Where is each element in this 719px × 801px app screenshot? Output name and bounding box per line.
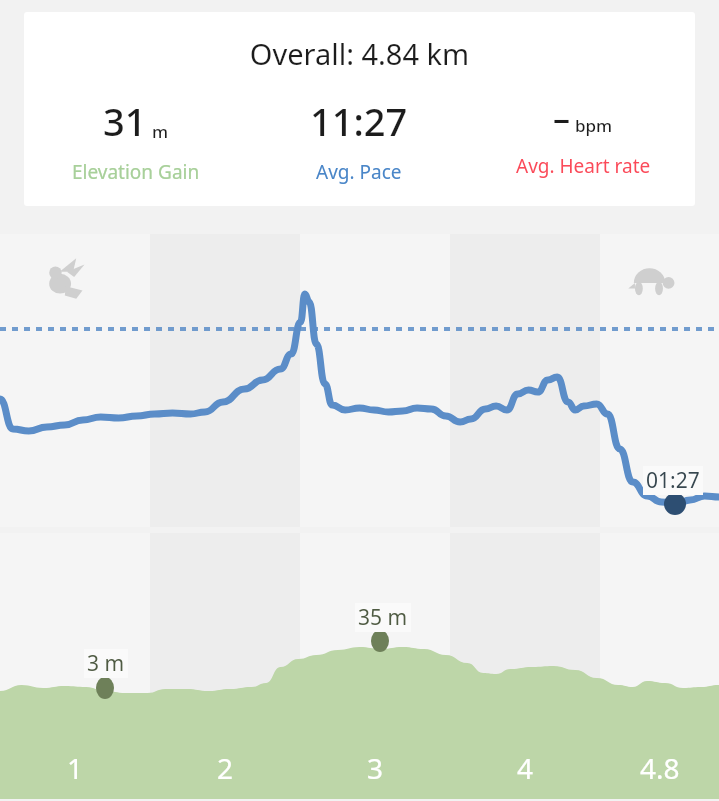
button[interactable]: 31	[24, 95, 247, 185]
staticText: –	[553, 95, 570, 141]
other: Slow pace	[626, 256, 682, 312]
staticText: 4	[517, 749, 534, 787]
staticText: Elevation Gain	[72, 159, 200, 185]
other: Fast pace	[44, 254, 96, 306]
staticText: 1	[67, 749, 84, 787]
button[interactable]: 01:27	[0, 234, 719, 527]
staticText: 31	[103, 95, 147, 147]
staticText: 2	[217, 749, 234, 787]
staticText: m	[152, 120, 169, 143]
staticText: 3 m	[87, 649, 125, 678]
staticText: 3	[367, 749, 384, 787]
button[interactable]: Overall: 4.84 km	[24, 12, 695, 206]
staticText: 35 m	[358, 603, 408, 632]
staticText: Avg. Heart rate	[516, 153, 651, 179]
staticText: 01:27	[646, 466, 700, 495]
staticText: Avg. Pace	[316, 159, 402, 185]
staticText: Overall: 4.84 km	[24, 34, 695, 73]
staticText: 4.8	[640, 749, 680, 787]
staticText: bpm	[575, 114, 613, 137]
staticText: 11:27	[310, 95, 408, 147]
button[interactable]: 11:27	[247, 95, 471, 185]
button[interactable]: 3 m	[0, 533, 719, 799]
button[interactable]: –	[471, 95, 695, 179]
